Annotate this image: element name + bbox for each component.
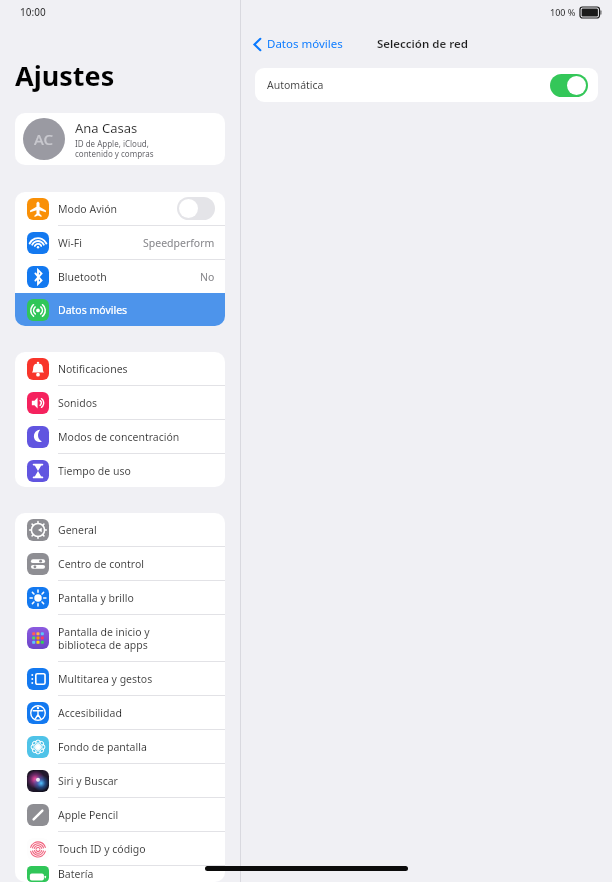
staticText: Modo Avión [58, 202, 177, 216]
button[interactable]: Automática [255, 68, 598, 102]
staticText: ID de Apple, iCloud, contenido y compras [75, 138, 154, 159]
button[interactable]: Tiempo de uso [15, 454, 225, 487]
staticText: Bluetooth [58, 270, 200, 284]
staticText: Pantalla y brillo [58, 591, 215, 605]
staticText: 10:00 [20, 5, 46, 19]
staticText: Accesibilidad [58, 706, 215, 720]
staticText: Automática [267, 78, 550, 92]
staticText: General [58, 523, 215, 537]
staticText: Datos móviles [267, 36, 343, 52]
button[interactable]: Multitarea y gestos [15, 662, 225, 695]
staticText: Ajustes [15, 57, 115, 94]
button[interactable]: Touch ID y código [15, 832, 225, 865]
button[interactable]: Datos móviles [15, 293, 225, 326]
staticText: Selección de red [377, 36, 468, 52]
button[interactable]: Siri y Buscar [15, 764, 225, 797]
staticText: Batería [58, 867, 215, 881]
button[interactable]: Batería [15, 866, 225, 882]
button[interactable]: Apple Pencil [15, 798, 225, 831]
button[interactable]: Modo Avión [177, 197, 215, 220]
button[interactable]: AC [15, 113, 225, 165]
button[interactable]: Bluetooth [15, 260, 225, 293]
button[interactable]: Notificaciones [15, 352, 225, 385]
staticText: AC [34, 129, 54, 149]
button[interactable]: Modo Avión [15, 192, 225, 225]
button[interactable]: Pantalla y brillo [15, 581, 225, 614]
staticText: Siri y Buscar [58, 774, 215, 788]
staticText: Sonidos [58, 396, 215, 410]
staticText: 100 % [550, 6, 576, 18]
staticText: Modos de concentración [58, 430, 215, 444]
button[interactable]: Automática [550, 74, 588, 97]
button[interactable]: Modos de concentración [15, 420, 225, 453]
staticText: Pantalla de inicio y biblioteca de apps [58, 625, 215, 652]
staticText: Tiempo de uso [58, 464, 215, 478]
staticText: Fondo de pantalla [58, 740, 215, 754]
staticText: Centro de control [58, 557, 215, 571]
staticText: Touch ID y código [58, 842, 215, 856]
staticText: No [200, 270, 215, 284]
button[interactable]: Sonidos [15, 386, 225, 419]
staticText: Datos móviles [58, 303, 215, 317]
staticText: Ana Casas [75, 119, 138, 137]
staticText: Notificaciones [58, 362, 215, 376]
button[interactable]: Pantalla de inicio y biblioteca de apps [15, 615, 225, 661]
staticText: Wi-Fi [58, 236, 143, 250]
staticText: Apple Pencil [58, 808, 215, 822]
button[interactable]: General [15, 513, 225, 546]
button[interactable]: Centro de control [15, 547, 225, 580]
button[interactable]: Fondo de pantalla [15, 730, 225, 763]
staticText: Speedperform [143, 236, 215, 250]
button[interactable]: Wi-Fi [15, 226, 225, 259]
button[interactable]: Datos móviles [249, 33, 347, 55]
staticText: Multitarea y gestos [58, 672, 215, 686]
button[interactable]: Accesibilidad [15, 696, 225, 729]
